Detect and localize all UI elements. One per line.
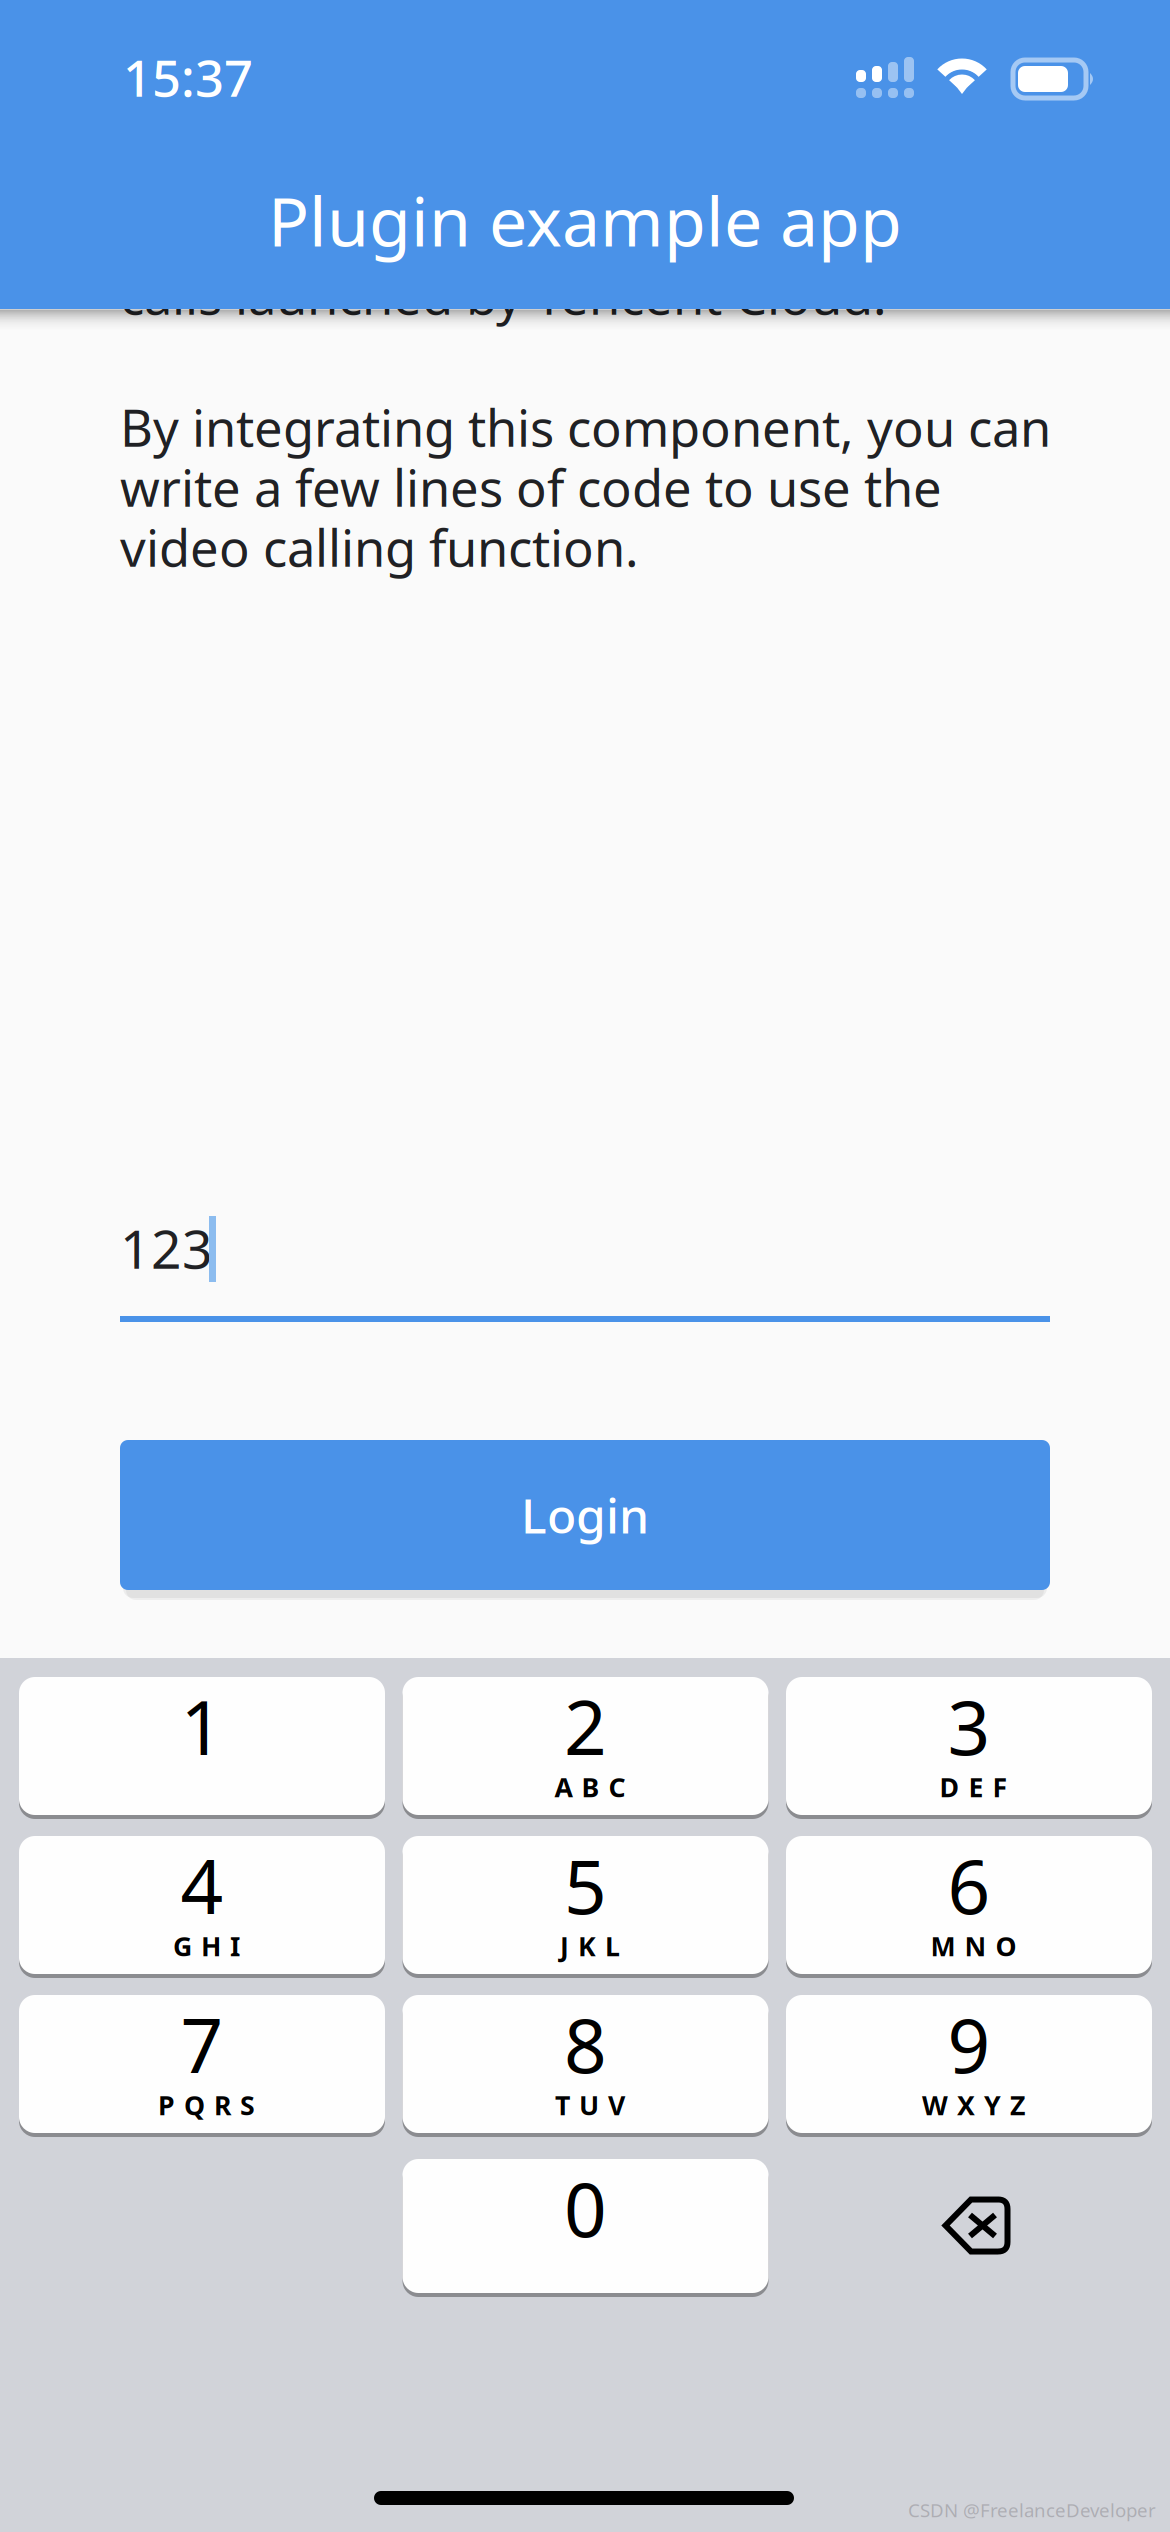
button[interactable]: 8	[402, 1995, 768, 2137]
staticText: Login	[521, 1483, 649, 1547]
staticText: write a few lines of code to use the	[120, 453, 942, 521]
staticText: 1	[180, 1676, 223, 1776]
staticText: 4	[180, 1835, 223, 1935]
staticText: 5	[564, 1835, 607, 1935]
staticText: video calling function.	[120, 513, 639, 581]
staticText: 6	[947, 1835, 990, 1935]
button[interactable]: 5	[402, 1836, 768, 1978]
button[interactable]: 6	[786, 1836, 1152, 1978]
staticText: ABC	[554, 1769, 625, 1805]
button[interactable]: 9	[786, 1995, 1152, 2137]
staticText: 3	[947, 1676, 990, 1776]
staticText: JKL	[560, 1928, 620, 1964]
staticText: Plugin example app	[268, 175, 902, 265]
staticText: 9	[947, 1994, 990, 2094]
staticText: CSDN @FreelanceDeveloper	[908, 2498, 1156, 2522]
staticText: TUV	[555, 2087, 625, 2123]
staticText: PQRS	[158, 2087, 255, 2123]
staticText: 7	[180, 1994, 223, 2094]
staticText: 0	[564, 2158, 607, 2258]
button[interactable]: Login	[120, 1440, 1050, 1590]
staticText: calls launched by Tencent Cloud.	[120, 261, 887, 329]
button[interactable]: User ID	[120, 1200, 1050, 1322]
staticText: 2	[564, 1676, 607, 1776]
button[interactable]: 7	[19, 1995, 385, 2137]
button[interactable]: 0	[402, 2159, 768, 2297]
staticText: GHI	[173, 1928, 240, 1964]
button[interactable]: Delete	[942, 2196, 1012, 2256]
staticText: WXYZ	[922, 2087, 1025, 2123]
staticText: By integrating this component, you can	[120, 393, 1051, 461]
button[interactable]: 2	[402, 1677, 768, 1819]
button[interactable]: 3	[786, 1677, 1152, 1819]
staticText: MNO	[930, 1928, 1016, 1964]
staticText: DEF	[939, 1769, 1007, 1805]
staticText: 8	[564, 1994, 607, 2094]
button[interactable]: 4	[19, 1836, 385, 1978]
staticText: 123	[120, 1213, 213, 1283]
staticText: 15:37	[123, 43, 253, 111]
button[interactable]: 1	[19, 1677, 385, 1819]
